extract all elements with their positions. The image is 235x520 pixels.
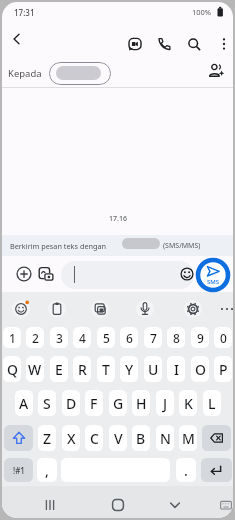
button[interactable] <box>126 35 144 53</box>
button[interactable]: V <box>109 425 127 451</box>
button[interactable]: X <box>62 425 80 451</box>
staticText: D <box>66 394 77 413</box>
button[interactable]: N <box>156 425 174 451</box>
staticText: , <box>45 461 49 480</box>
staticText: J <box>163 394 168 413</box>
button[interactable]: 0 <box>214 327 232 348</box>
button[interactable] <box>109 496 127 514</box>
staticText: R <box>78 360 87 379</box>
staticText: B <box>136 429 146 448</box>
button[interactable] <box>179 266 195 282</box>
button[interactable] <box>218 497 233 513</box>
staticText: K <box>184 394 193 413</box>
button[interactable] <box>155 35 173 53</box>
button[interactable] <box>61 261 194 289</box>
button[interactable]: !#1 <box>4 458 33 482</box>
staticText: U <box>148 360 159 379</box>
staticText: Kepada <box>8 67 42 80</box>
button[interactable]: J <box>156 390 174 416</box>
button[interactable] <box>201 458 232 482</box>
button[interactable]: 9 <box>191 327 209 348</box>
button[interactable] <box>183 299 203 319</box>
button[interactable] <box>47 299 67 319</box>
staticText: M <box>182 429 195 448</box>
button[interactable]: Q <box>3 356 21 382</box>
staticText: . <box>184 461 188 480</box>
staticText: Berkirim pesan teks dengan <box>10 241 107 251</box>
button[interactable]: C <box>85 425 103 451</box>
staticText: I <box>174 360 179 379</box>
button[interactable] <box>185 35 203 53</box>
button[interactable] <box>8 30 26 48</box>
button[interactable]: 2 <box>26 327 44 348</box>
button[interactable]: 7 <box>144 327 162 348</box>
button[interactable] <box>215 35 233 53</box>
button[interactable]: , <box>37 458 57 482</box>
button[interactable]: 1 <box>3 327 21 348</box>
staticText: P <box>219 360 228 379</box>
button[interactable] <box>202 425 231 451</box>
button[interactable] <box>207 62 225 80</box>
button[interactable]: U <box>144 356 162 382</box>
button[interactable]: 3 <box>50 327 68 348</box>
button[interactable] <box>49 62 111 85</box>
staticText: X <box>67 429 76 448</box>
staticText: A <box>19 394 29 413</box>
staticText: W <box>28 360 42 379</box>
button[interactable]: B <box>132 425 150 451</box>
staticText: 9 <box>197 330 204 346</box>
button[interactable]: 8 <box>167 327 185 348</box>
button[interactable]: E <box>50 356 68 382</box>
button[interactable]: . <box>176 458 196 482</box>
button[interactable] <box>36 264 56 284</box>
button[interactable] <box>90 299 110 319</box>
button[interactable]: S <box>38 390 56 416</box>
button[interactable]: L <box>203 390 221 416</box>
staticText: N <box>160 429 171 448</box>
button[interactable]: 5 <box>97 327 115 348</box>
button[interactable]: A <box>15 390 33 416</box>
staticText: G <box>113 394 124 413</box>
button[interactable]: I <box>167 356 185 382</box>
staticText: F <box>90 394 98 413</box>
button[interactable]: G <box>109 390 127 416</box>
staticText: !#1 <box>13 465 25 476</box>
button[interactable]: F <box>85 390 103 416</box>
button[interactable]: D <box>62 390 80 416</box>
button[interactable] <box>166 496 184 514</box>
staticText: L <box>208 394 216 413</box>
staticText: 5 <box>103 330 110 346</box>
button[interactable]: P <box>214 356 232 382</box>
button[interactable]: 4 <box>73 327 91 348</box>
staticText: 17:31 <box>14 7 35 18</box>
staticText: 3 <box>56 330 63 346</box>
button[interactable]: R <box>73 356 91 382</box>
button[interactable] <box>14 264 34 284</box>
staticText: 6 <box>126 330 133 346</box>
button[interactable]: H <box>132 390 150 416</box>
button[interactable]: O <box>191 356 209 382</box>
staticText: Y <box>125 360 134 379</box>
button[interactable] <box>198 260 228 290</box>
staticText: H <box>136 394 147 413</box>
button[interactable]: K <box>179 390 197 416</box>
button[interactable] <box>41 496 59 514</box>
button[interactable]: W <box>26 356 44 382</box>
staticText: Q <box>7 360 18 379</box>
button[interactable] <box>11 299 31 319</box>
staticText: (SMS/MMS) <box>163 241 201 251</box>
button[interactable]: Y <box>120 356 138 382</box>
staticText: S <box>43 394 51 413</box>
staticText: T <box>102 360 110 379</box>
button[interactable]: T <box>97 356 115 382</box>
button[interactable] <box>217 299 233 319</box>
staticText: O <box>195 360 206 379</box>
staticText: SMS <box>207 278 220 286</box>
button[interactable]: 6 <box>120 327 138 348</box>
staticText: E <box>55 360 63 379</box>
button[interactable]: M <box>179 425 197 451</box>
button[interactable] <box>135 299 155 319</box>
button[interactable]: Z <box>38 425 56 451</box>
button[interactable] <box>4 425 33 451</box>
